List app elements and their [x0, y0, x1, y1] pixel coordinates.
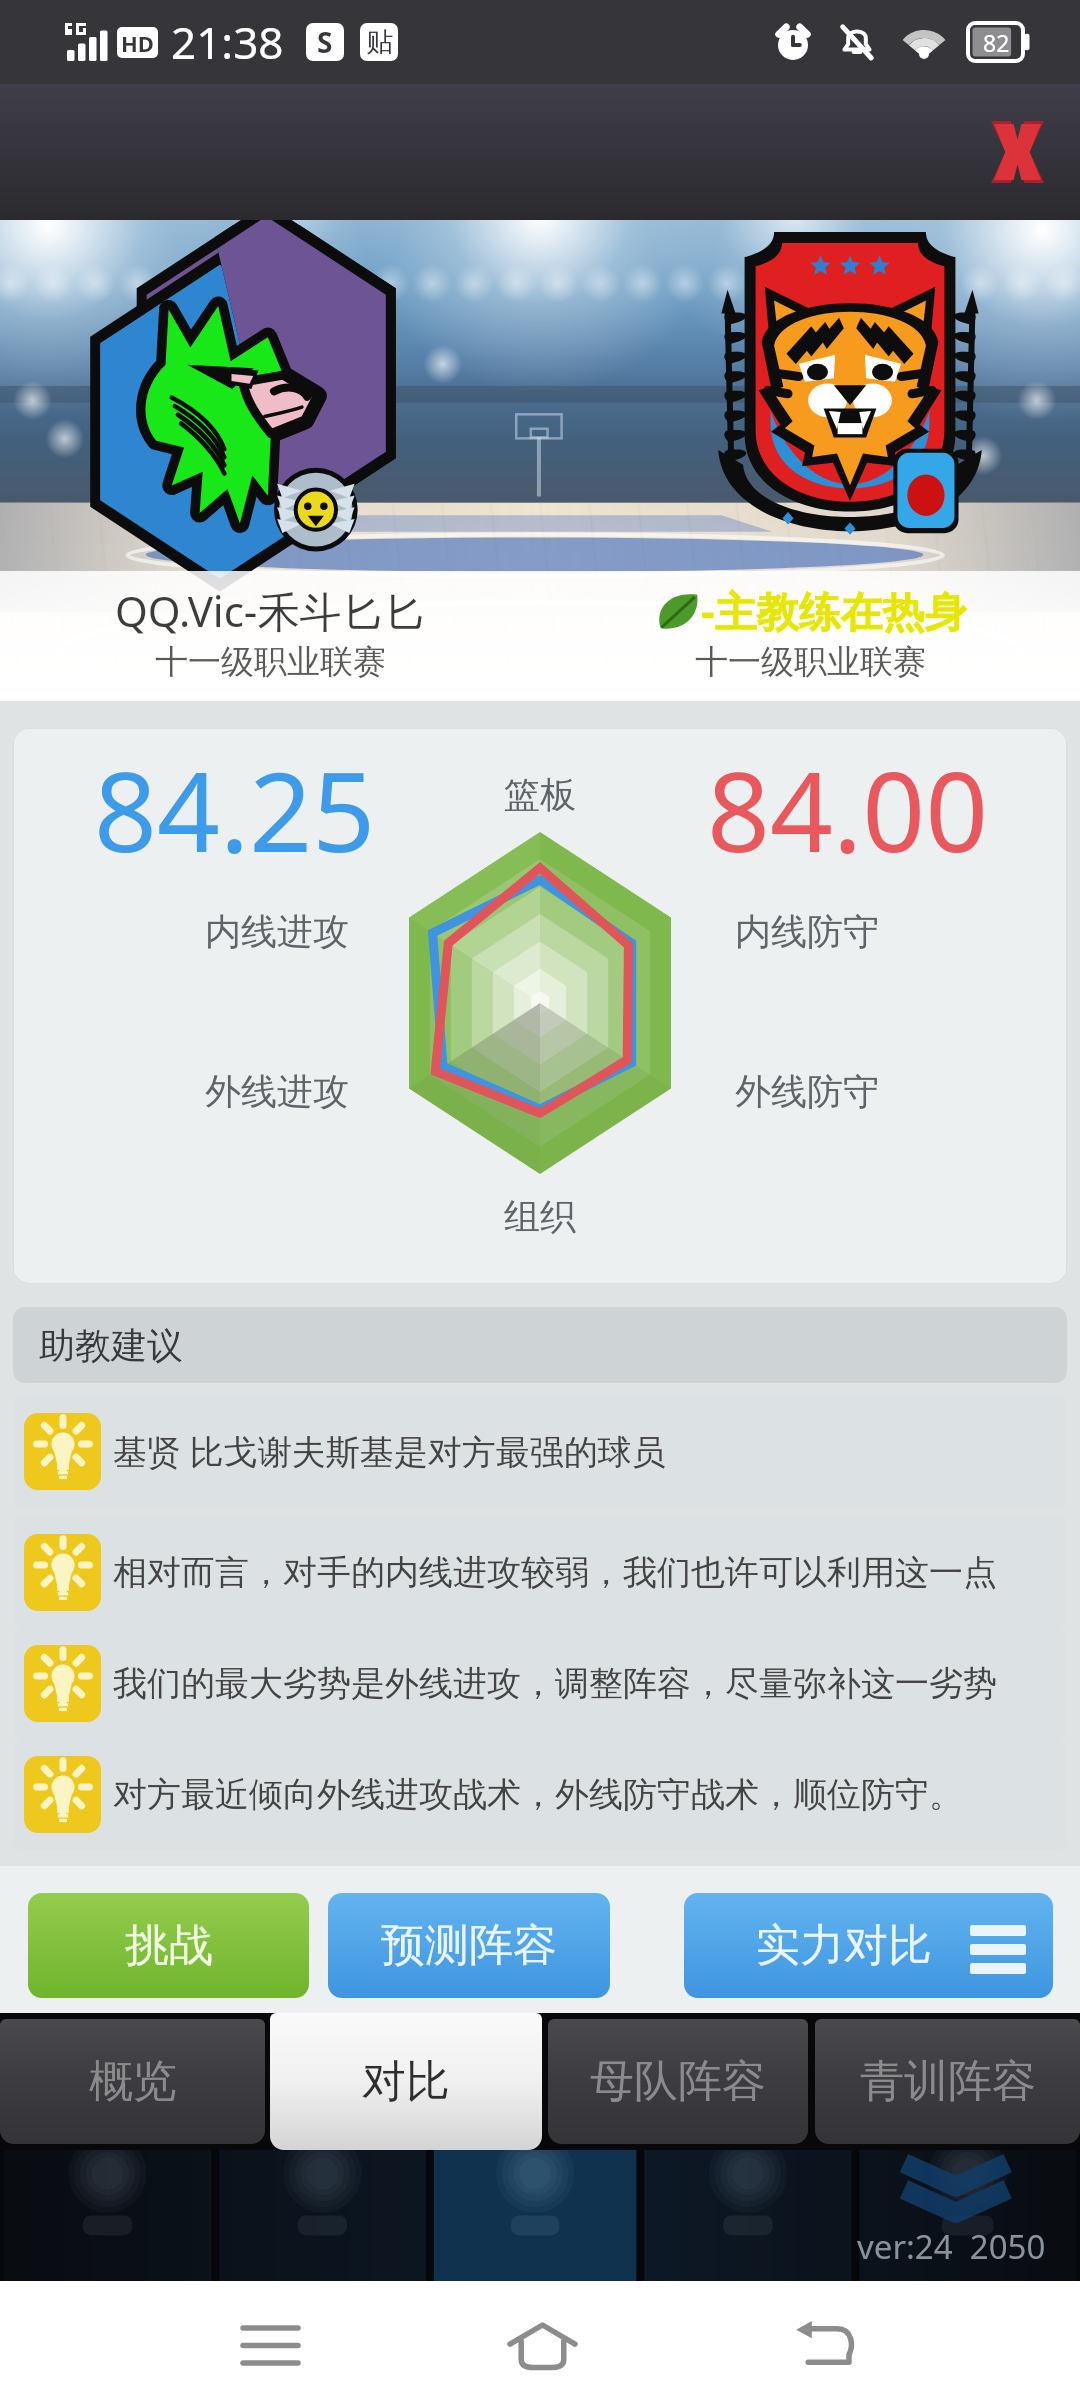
staticText: 21:38 [171, 12, 284, 72]
staticText: 组织 [504, 1194, 576, 1239]
staticText: 84.00 [707, 734, 989, 864]
button[interactable]: Recents [210, 2285, 330, 2405]
button[interactable]: 预测阵容 [328, 1893, 610, 1998]
button[interactable]: Close [962, 97, 1072, 207]
staticText: 概览 [89, 2054, 177, 2109]
staticText: 十一级职业联赛 [155, 641, 386, 683]
staticText: 内线进攻 [205, 909, 349, 954]
staticText: 贴 [366, 25, 393, 59]
staticText: 实力对比 [756, 1918, 932, 1973]
staticText: 84.25 [94, 734, 376, 864]
staticText: 预测阵容 [381, 1918, 557, 1973]
staticText: 篮板 [504, 772, 576, 817]
button[interactable]: 挑战 [28, 1893, 309, 1998]
staticText: QQ.Vic-禾斗匕匕 [115, 582, 426, 639]
staticText: 对方最近倾向外线进攻战术，外线防守战术，顺位防守。 [113, 1773, 963, 1816]
staticText: 青训阵容 [860, 2054, 1036, 2109]
button[interactable]: 我们的最大劣势是外线进攻，调整阵容，尽量弥补这一劣势 [13, 1627, 1067, 1739]
staticText: HD [121, 28, 154, 58]
staticText: 内线防守 [735, 909, 879, 954]
staticText: 外线防守 [735, 1069, 879, 1114]
staticText: 对比 [362, 2054, 450, 2109]
staticText: 82 [983, 27, 1010, 58]
staticText: 十一级职业联赛 [695, 641, 926, 683]
staticText: ver:24 2050 [857, 2224, 1046, 2269]
button[interactable]: 相对而言，对手的内线进攻较弱，我们也许可以利用这一点 [13, 1516, 1067, 1628]
button[interactable]: 青训阵容 [815, 2019, 1080, 2144]
staticText: 相对而言，对手的内线进攻较弱，我们也许可以利用这一点 [113, 1551, 997, 1594]
button[interactable]: 对比 [270, 2013, 542, 2150]
button[interactable]: 基贤 比戈谢夫斯基是对方最强的球员 [13, 1395, 1067, 1507]
button[interactable]: Home [482, 2285, 602, 2405]
staticText: S [317, 23, 333, 61]
button[interactable]: Back [765, 2285, 885, 2405]
staticText: 母队阵容 [590, 2054, 766, 2109]
staticText: 我们的最大劣势是外线进攻，调整阵容，尽量弥补这一劣势 [113, 1662, 997, 1705]
button[interactable]: 母队阵容 [548, 2019, 808, 2144]
button[interactable]: 概览 [0, 2019, 265, 2144]
staticText: 挑战 [125, 1918, 213, 1973]
staticText: 外线进攻 [205, 1069, 349, 1114]
button[interactable]: 实力对比 [684, 1893, 1053, 1998]
button[interactable]: 对方最近倾向外线进攻战术，外线防守战术，顺位防守。 [13, 1738, 1067, 1850]
staticText: -主教练在热身 [701, 582, 967, 639]
staticText: 助教建议 [39, 1323, 183, 1368]
staticText: 基贤 比戈谢夫斯基是对方最强的球员 [113, 1428, 666, 1474]
